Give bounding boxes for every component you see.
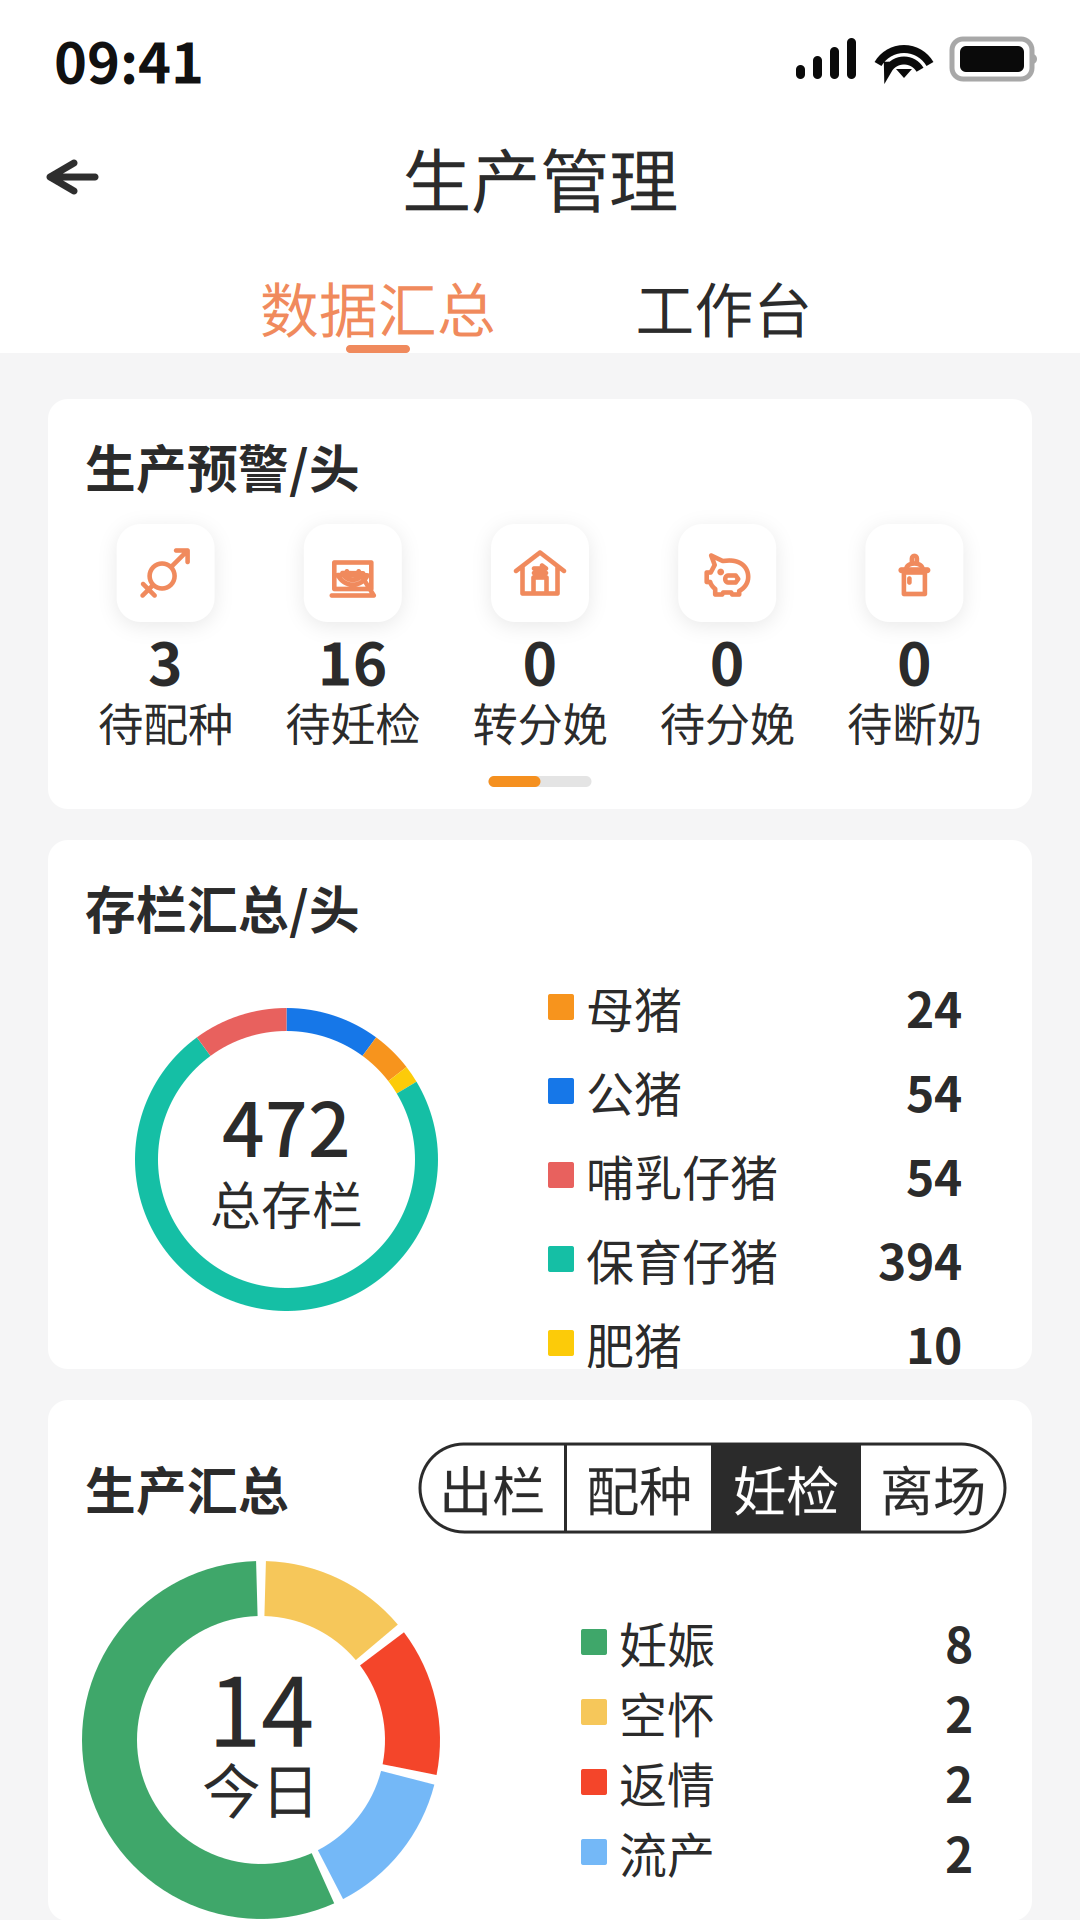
staticText: 0 bbox=[522, 624, 557, 696]
staticText: 保育仔猪 bbox=[586, 1230, 778, 1288]
staticText: 2 bbox=[945, 1683, 973, 1741]
button[interactable]: 离场 bbox=[861, 1444, 1005, 1532]
staticText: 肥猪 bbox=[586, 1314, 682, 1372]
button[interactable]: 16 bbox=[259, 524, 446, 742]
staticText: 0 bbox=[897, 624, 932, 696]
button[interactable]: 0 bbox=[446, 524, 634, 742]
staticText: 母猪 bbox=[586, 978, 682, 1036]
staticText: 394 bbox=[878, 1230, 962, 1288]
staticText: 14 bbox=[208, 1647, 314, 1763]
staticText: 生产管理 bbox=[402, 135, 678, 219]
staticText: 待配种 bbox=[98, 694, 233, 749]
staticText: 配种 bbox=[586, 1456, 692, 1520]
staticText: 数据汇总 bbox=[260, 271, 496, 343]
staticText: 待分娩 bbox=[660, 694, 795, 749]
staticText: 10 bbox=[906, 1314, 962, 1372]
staticText: 生产预警/头 bbox=[85, 435, 360, 497]
button[interactable]: 返回 bbox=[24, 135, 120, 219]
staticText: 妊检 bbox=[733, 1456, 839, 1520]
button[interactable]: 0 bbox=[821, 524, 1008, 742]
staticText: 待断奶 bbox=[847, 694, 982, 749]
staticText: 转分娩 bbox=[472, 694, 607, 749]
staticText: 公猪 bbox=[586, 1062, 682, 1120]
button[interactable]: 0 bbox=[634, 524, 821, 742]
staticText: 472 bbox=[222, 1079, 351, 1170]
staticText: 离场 bbox=[880, 1456, 986, 1520]
button[interactable]: 3 bbox=[72, 524, 259, 742]
staticText: 存栏汇总/头 bbox=[85, 876, 360, 938]
staticText: 流产 bbox=[619, 1823, 715, 1881]
staticText: 总存栏 bbox=[210, 1172, 363, 1233]
button[interactable]: 工作台 bbox=[584, 236, 864, 353]
button[interactable]: 配种 bbox=[567, 1444, 711, 1532]
staticText: 3 bbox=[148, 624, 183, 696]
staticText: 返情 bbox=[619, 1753, 715, 1811]
staticText: 09:41 bbox=[54, 25, 204, 93]
staticText: 出栏 bbox=[439, 1456, 545, 1520]
staticText: 54 bbox=[906, 1062, 962, 1120]
staticText: 2 bbox=[945, 1753, 973, 1811]
button[interactable]: 出栏 bbox=[420, 1444, 564, 1532]
staticText: 2 bbox=[945, 1823, 973, 1881]
staticText: 生产汇总 bbox=[85, 1457, 289, 1519]
staticText: 16 bbox=[318, 624, 388, 696]
staticText: 空怀 bbox=[619, 1683, 715, 1741]
button[interactable]: 妊检 bbox=[714, 1444, 858, 1532]
button[interactable]: 数据汇总 bbox=[238, 236, 518, 353]
staticText: 工作台 bbox=[635, 271, 812, 343]
staticText: 8 bbox=[945, 1613, 973, 1671]
staticText: 54 bbox=[906, 1146, 962, 1204]
staticText: 哺乳仔猪 bbox=[586, 1146, 778, 1204]
staticText: 今日 bbox=[202, 1752, 320, 1824]
staticText: 0 bbox=[710, 624, 745, 696]
staticText: 妊娠 bbox=[619, 1613, 715, 1671]
staticText: 待妊检 bbox=[285, 694, 420, 749]
staticText: 24 bbox=[906, 978, 962, 1036]
